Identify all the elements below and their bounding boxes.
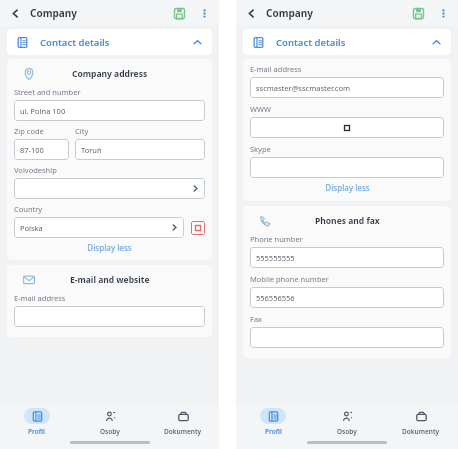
button[interactable]: Dokumenty <box>146 403 219 441</box>
staticText: E-mail address <box>250 64 302 74</box>
staticText: Profil <box>265 427 282 436</box>
staticText: sscmaster@sscmaster.com <box>256 83 350 93</box>
button[interactable]: Save <box>408 3 428 23</box>
staticText: Voivodeship <box>14 165 57 175</box>
button[interactable]: Display less <box>250 178 444 196</box>
button[interactable]: More options <box>195 4 213 22</box>
staticText: Skype <box>250 144 271 154</box>
button[interactable]: Back <box>243 5 259 21</box>
button[interactable]: Contact details <box>7 29 212 55</box>
button[interactable] <box>250 117 444 138</box>
staticText: Company address <box>72 68 148 80</box>
button[interactable]: Clear country <box>191 221 205 235</box>
staticText: Contact details <box>276 36 346 49</box>
staticText: Display less <box>87 242 132 253</box>
staticText: Osoby <box>337 427 357 436</box>
staticText: Osoby <box>100 427 120 436</box>
staticText: 556556556 <box>256 293 295 303</box>
button[interactable] <box>14 306 205 327</box>
staticText: Fax <box>250 314 263 324</box>
staticText: Street and number <box>14 87 81 97</box>
button[interactable]: sscmaster@sscmaster.com <box>250 77 444 98</box>
staticText: Phone number <box>250 234 303 244</box>
button[interactable]: 556556556 <box>250 287 444 308</box>
staticText: Polska <box>20 223 43 233</box>
button[interactable]: Osoby <box>73 403 146 441</box>
button[interactable]: 555555555 <box>250 247 444 268</box>
button[interactable]: Save <box>169 3 189 23</box>
button[interactable]: Toruń <box>75 139 205 160</box>
staticText: E-mail address <box>14 293 66 303</box>
staticText: Country <box>14 204 43 214</box>
staticText: Contact details <box>40 36 110 49</box>
button[interactable]: More options <box>434 4 452 22</box>
button[interactable]: Osoby <box>310 403 384 441</box>
button[interactable]: Contact details <box>243 29 451 55</box>
button[interactable]: ul. Polna 100 <box>14 100 205 121</box>
staticText: Profil <box>28 427 45 436</box>
staticText: E-mail and website <box>70 274 150 286</box>
staticText: Dokumenty <box>164 427 202 436</box>
button[interactable]: Polska <box>14 217 184 238</box>
staticText: Toruń <box>81 145 102 155</box>
staticText: Zip code <box>14 126 44 136</box>
staticText: Company <box>30 6 77 20</box>
staticText: 87-100 <box>20 145 44 155</box>
staticText: Phones and fax <box>315 215 380 227</box>
staticText: WWW <box>250 104 271 114</box>
button[interactable]: 87-100 <box>14 139 69 160</box>
button[interactable] <box>14 178 205 199</box>
button[interactable]: Display less <box>14 238 205 256</box>
button[interactable] <box>250 157 444 178</box>
staticText: Company <box>266 6 313 20</box>
staticText: City <box>75 126 89 136</box>
button[interactable]: Profil <box>236 403 310 441</box>
staticText: Display less <box>325 182 370 193</box>
staticText: Dokumenty <box>402 427 440 436</box>
staticText: Mobile phone number <box>250 274 329 284</box>
button[interactable] <box>250 327 444 348</box>
staticText: 555555555 <box>256 253 295 263</box>
button[interactable]: Dokumenty <box>384 403 458 441</box>
button[interactable]: Profil <box>0 403 73 441</box>
button[interactable]: Back <box>7 5 23 21</box>
staticText: ul. Polna 100 <box>20 106 66 116</box>
